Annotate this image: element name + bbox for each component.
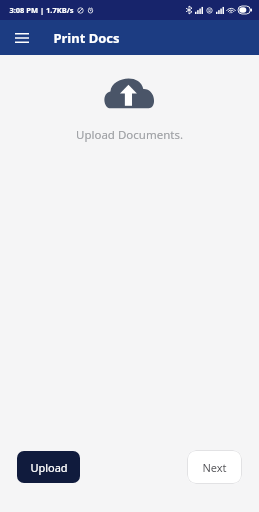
button[interactable]: Next: [187, 450, 242, 484]
button[interactable]: Upload: [17, 451, 80, 483]
staticText: Upload: [30, 460, 68, 475]
staticText: Upload Documents.: [76, 127, 183, 143]
other: Upload documents icon: [103, 75, 156, 110]
staticText: Next: [202, 460, 227, 475]
staticText: 3:08 PM | 1.7KB/s: [9, 5, 74, 15]
staticText: Print Docs: [53, 29, 120, 47]
button[interactable]: Open navigation menu: [7, 23, 37, 53]
